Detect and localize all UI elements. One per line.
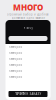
staticText: Категория bbox=[8, 57, 22, 61]
staticText: Категория bbox=[8, 69, 22, 73]
staticText: Категория bbox=[8, 45, 22, 49]
staticText: доставка в одно касание bbox=[11, 16, 44, 20]
staticText: Я хочу bbox=[23, 26, 32, 30]
button[interactable]: ПЕРЕЙТИ К ЗАКАЗУ bbox=[8, 91, 47, 97]
staticText: Категория bbox=[8, 75, 22, 79]
staticText: МНОГО bbox=[13, 2, 43, 13]
staticText: Категория bbox=[8, 51, 22, 55]
staticText: Категория bbox=[8, 63, 22, 67]
staticText: ПЕРЕЙТИ К ЗАКАЗУ bbox=[14, 92, 41, 96]
staticText: огромный выбор и удобная bbox=[7, 13, 49, 16]
